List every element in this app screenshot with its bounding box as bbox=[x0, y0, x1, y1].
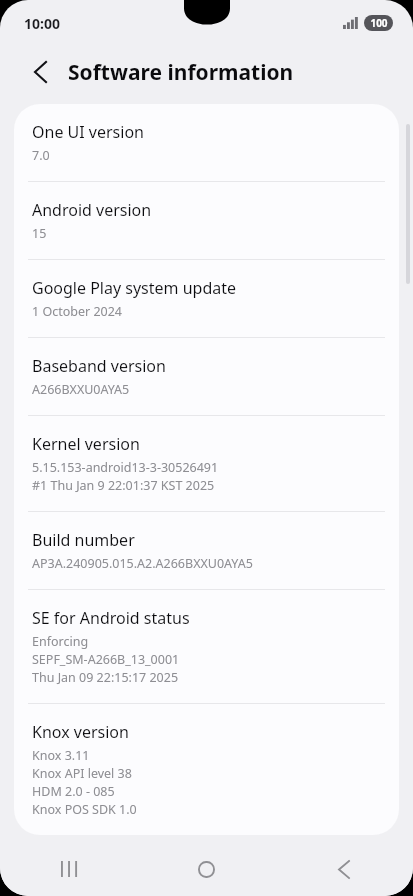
staticText: Knox API level 38 bbox=[32, 765, 132, 782]
staticText: Enforcing bbox=[32, 633, 89, 650]
staticText: One UI version bbox=[32, 121, 144, 143]
staticText: Software information bbox=[68, 58, 294, 87]
button[interactable]: Baseband version bbox=[14, 338, 399, 415]
staticText: Android version bbox=[32, 199, 152, 221]
button[interactable]: Knox version bbox=[14, 704, 399, 835]
button[interactable]: SE for Android status bbox=[14, 590, 399, 703]
staticText: 1 October 2024 bbox=[32, 303, 122, 320]
staticText: Google Play system update bbox=[32, 277, 237, 299]
button[interactable]: Kernel version bbox=[14, 416, 399, 511]
staticText: Knox 3.11 bbox=[32, 747, 90, 764]
staticText: Knox version bbox=[32, 721, 129, 743]
button[interactable]: Back bbox=[308, 845, 380, 893]
button[interactable]: Home bbox=[170, 845, 242, 893]
staticText: 7.0 bbox=[32, 147, 50, 164]
staticText: #1 Thu Jan 9 22:01:37 KST 2025 bbox=[32, 477, 215, 494]
button[interactable]: One UI version bbox=[14, 104, 399, 181]
staticText: Build number bbox=[32, 529, 135, 551]
staticText: A266BXXU0AYA5 bbox=[32, 381, 130, 398]
staticText: Thu Jan 09 22:15:17 2025 bbox=[32, 669, 179, 686]
button[interactable]: Recents bbox=[33, 845, 105, 893]
button[interactable]: Android version bbox=[14, 182, 399, 259]
staticText: SE for Android status bbox=[32, 607, 190, 629]
staticText: 100 bbox=[370, 16, 388, 30]
button[interactable]: Google Play system update bbox=[14, 260, 399, 337]
staticText: Knox POS SDK 1.0 bbox=[32, 801, 137, 818]
staticText: 10:00 bbox=[24, 14, 60, 33]
staticText: HDM 2.0 - 085 bbox=[32, 783, 115, 800]
staticText: Kernel version bbox=[32, 433, 140, 455]
staticText: AP3A.240905.015.A2.A266BXXU0AYA5 bbox=[32, 555, 253, 572]
staticText: 15 bbox=[32, 225, 47, 242]
staticText: 5.15.153-android13-3-30526491 bbox=[32, 459, 219, 476]
button[interactable]: Build number bbox=[14, 512, 399, 589]
button[interactable]: Back bbox=[22, 54, 58, 90]
staticText: SEPF_SM-A266B_13_0001 bbox=[32, 651, 180, 668]
staticText: Baseband version bbox=[32, 355, 166, 377]
